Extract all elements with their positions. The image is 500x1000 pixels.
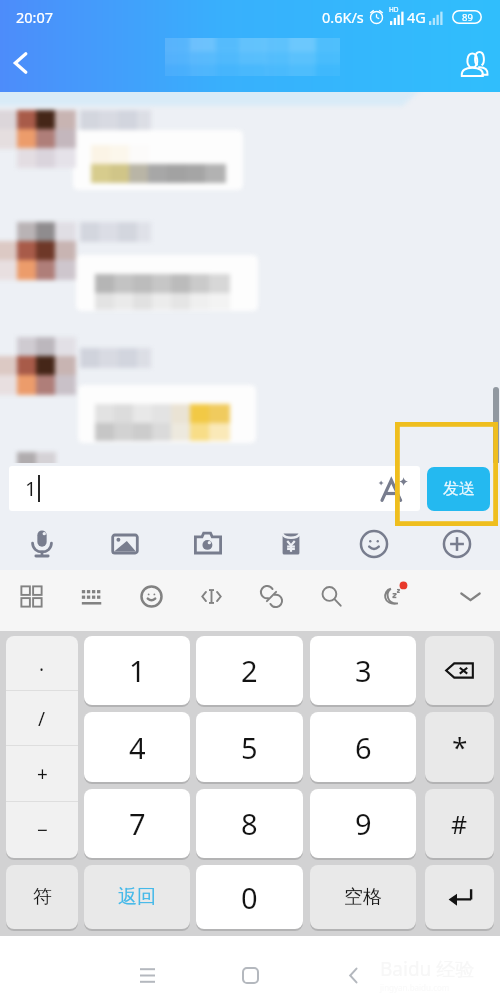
staticText: # — [451, 807, 468, 841]
button[interactable]: 符 — [6, 865, 78, 929]
staticText: 20:07 — [16, 7, 54, 27]
button[interactable]: Red packet — [269, 522, 313, 566]
button[interactable]: + — [6, 746, 78, 802]
button[interactable]: / — [6, 691, 78, 746]
button[interactable]: Group members — [448, 35, 500, 91]
button[interactable]: 7 — [84, 789, 190, 858]
button[interactable] — [73, 130, 243, 190]
button[interactable]: 6 — [310, 712, 416, 782]
button[interactable]: Keyboard layout — [71, 576, 111, 616]
button[interactable]: Back — [0, 35, 42, 91]
staticText: 2 — [241, 651, 258, 690]
button[interactable]: Enter — [425, 865, 494, 929]
button[interactable]: Apps — [11, 576, 51, 616]
button[interactable] — [78, 385, 256, 443]
button[interactable]: Home — [226, 951, 274, 999]
button[interactable]: Voice message — [20, 522, 64, 566]
staticText: HD — [389, 5, 399, 14]
staticText: 空格 — [344, 885, 382, 909]
staticText: 3 — [355, 651, 372, 690]
staticText: / — [38, 706, 46, 732]
button[interactable]: Back — [329, 951, 377, 999]
button[interactable]: 返回 — [84, 865, 190, 929]
button[interactable]: 8 — [196, 789, 303, 858]
staticText: 4 — [129, 728, 146, 767]
button[interactable]: Backspace — [425, 636, 494, 705]
button[interactable]: 2 — [196, 636, 303, 705]
staticText: 4G — [407, 7, 426, 27]
button[interactable]: Recents — [123, 951, 171, 999]
staticText: 发送 — [443, 479, 475, 499]
button[interactable]: More — [435, 522, 479, 566]
staticText: 8 — [241, 804, 258, 843]
button[interactable]: 1 — [84, 636, 190, 705]
staticText: − — [37, 817, 48, 843]
button[interactable]: * — [425, 712, 494, 782]
button[interactable]: . — [6, 636, 78, 691]
button[interactable]: 5 — [196, 712, 303, 782]
button[interactable]: Night mode — [371, 576, 411, 616]
button[interactable]: 9 — [310, 789, 416, 858]
button[interactable]: 0 — [196, 865, 303, 929]
button[interactable]: # — [425, 789, 494, 858]
button[interactable]: Emoji — [352, 522, 396, 566]
staticText: 返回 — [118, 885, 156, 909]
button[interactable]: 1 — [9, 466, 420, 511]
button[interactable]: Text cursor — [191, 576, 231, 616]
staticText: 9 — [355, 804, 372, 843]
staticText: * — [452, 728, 468, 766]
button[interactable]: Emoji — [131, 576, 171, 616]
button[interactable]: − — [6, 802, 78, 858]
staticText: 7 — [129, 804, 146, 843]
staticText: 6 — [355, 728, 372, 767]
staticText: 0 — [241, 878, 258, 917]
button[interactable]: Search — [311, 576, 351, 616]
button[interactable]: 空格 — [310, 865, 416, 929]
staticText: 89 — [462, 11, 473, 24]
staticText: Baidu 经验 — [380, 956, 475, 982]
button[interactable]: AI font — [376, 471, 412, 507]
button[interactable]: 发送 — [427, 467, 490, 511]
staticText: + — [37, 761, 48, 787]
button[interactable]: 4 — [84, 712, 190, 782]
button[interactable]: 3 — [310, 636, 416, 705]
staticText: 符 — [33, 885, 52, 909]
button[interactable]: Photo — [103, 522, 147, 566]
button[interactable]: Hide keyboard — [450, 576, 490, 616]
button[interactable]: Clipboard — [251, 576, 291, 616]
staticText: . — [39, 651, 45, 677]
button[interactable] — [76, 255, 258, 311]
staticText: 5 — [241, 728, 258, 767]
staticText: 1 — [129, 651, 146, 690]
staticText: 0.6K/s — [322, 7, 364, 27]
staticText: 1 — [25, 475, 37, 502]
button[interactable]: Camera — [186, 522, 230, 566]
